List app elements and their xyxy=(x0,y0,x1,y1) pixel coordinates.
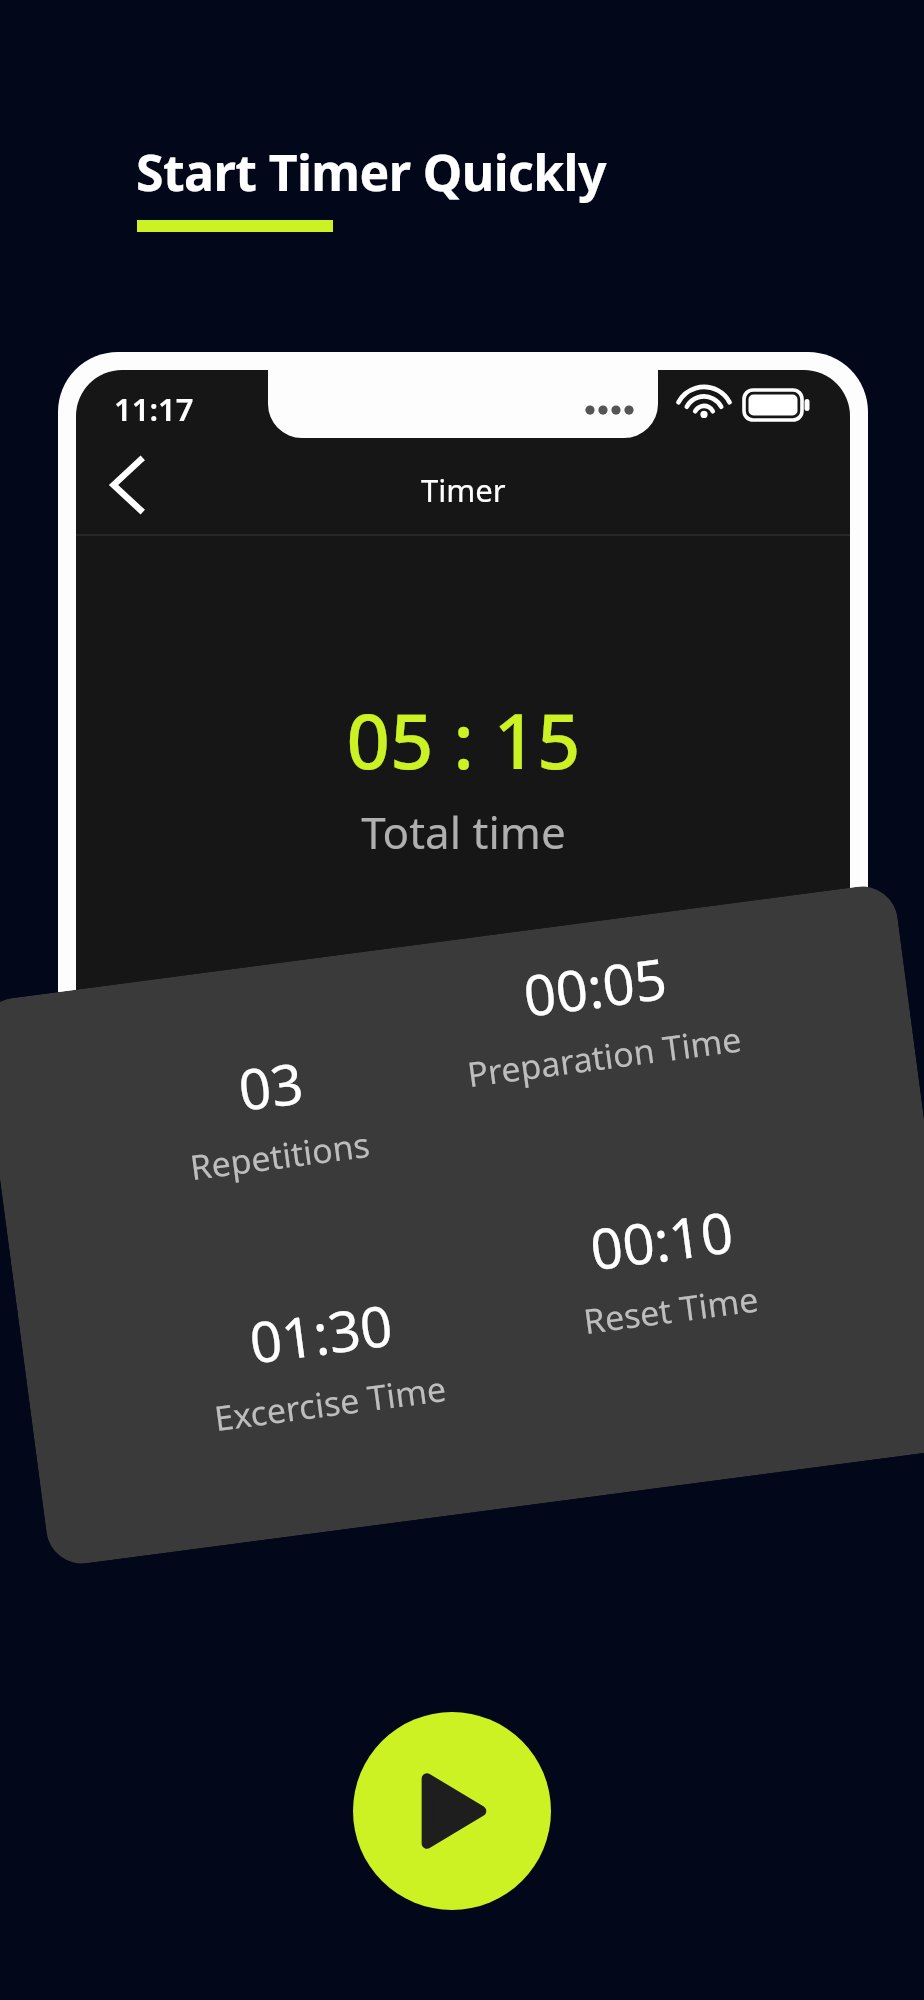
button[interactable]: Start timer xyxy=(353,1712,551,1910)
button[interactable]: Back xyxy=(86,444,168,526)
staticText: Excercise Time xyxy=(211,1365,449,1441)
staticText: Start Timer Quickly xyxy=(136,138,606,206)
button[interactable]: 00:10 xyxy=(487,1176,843,1359)
staticText: Reset Time xyxy=(580,1275,761,1344)
button[interactable]: 01:30 xyxy=(147,1269,502,1452)
staticText: Repetitions xyxy=(187,1121,373,1190)
staticText: 03 xyxy=(233,1043,308,1127)
staticText: 00:10 xyxy=(585,1192,738,1286)
staticText: 05 : 15 xyxy=(346,688,581,792)
staticText: 00:05 xyxy=(518,939,671,1033)
staticText: Timer xyxy=(421,469,506,511)
button[interactable]: 03 xyxy=(96,1021,451,1204)
staticText: 01:30 xyxy=(244,1286,397,1380)
staticText: 11:17 xyxy=(114,388,194,430)
button[interactable]: 00:05 xyxy=(421,922,776,1105)
staticText: Preparation Time xyxy=(464,1015,744,1097)
staticText: Total time xyxy=(361,802,566,862)
